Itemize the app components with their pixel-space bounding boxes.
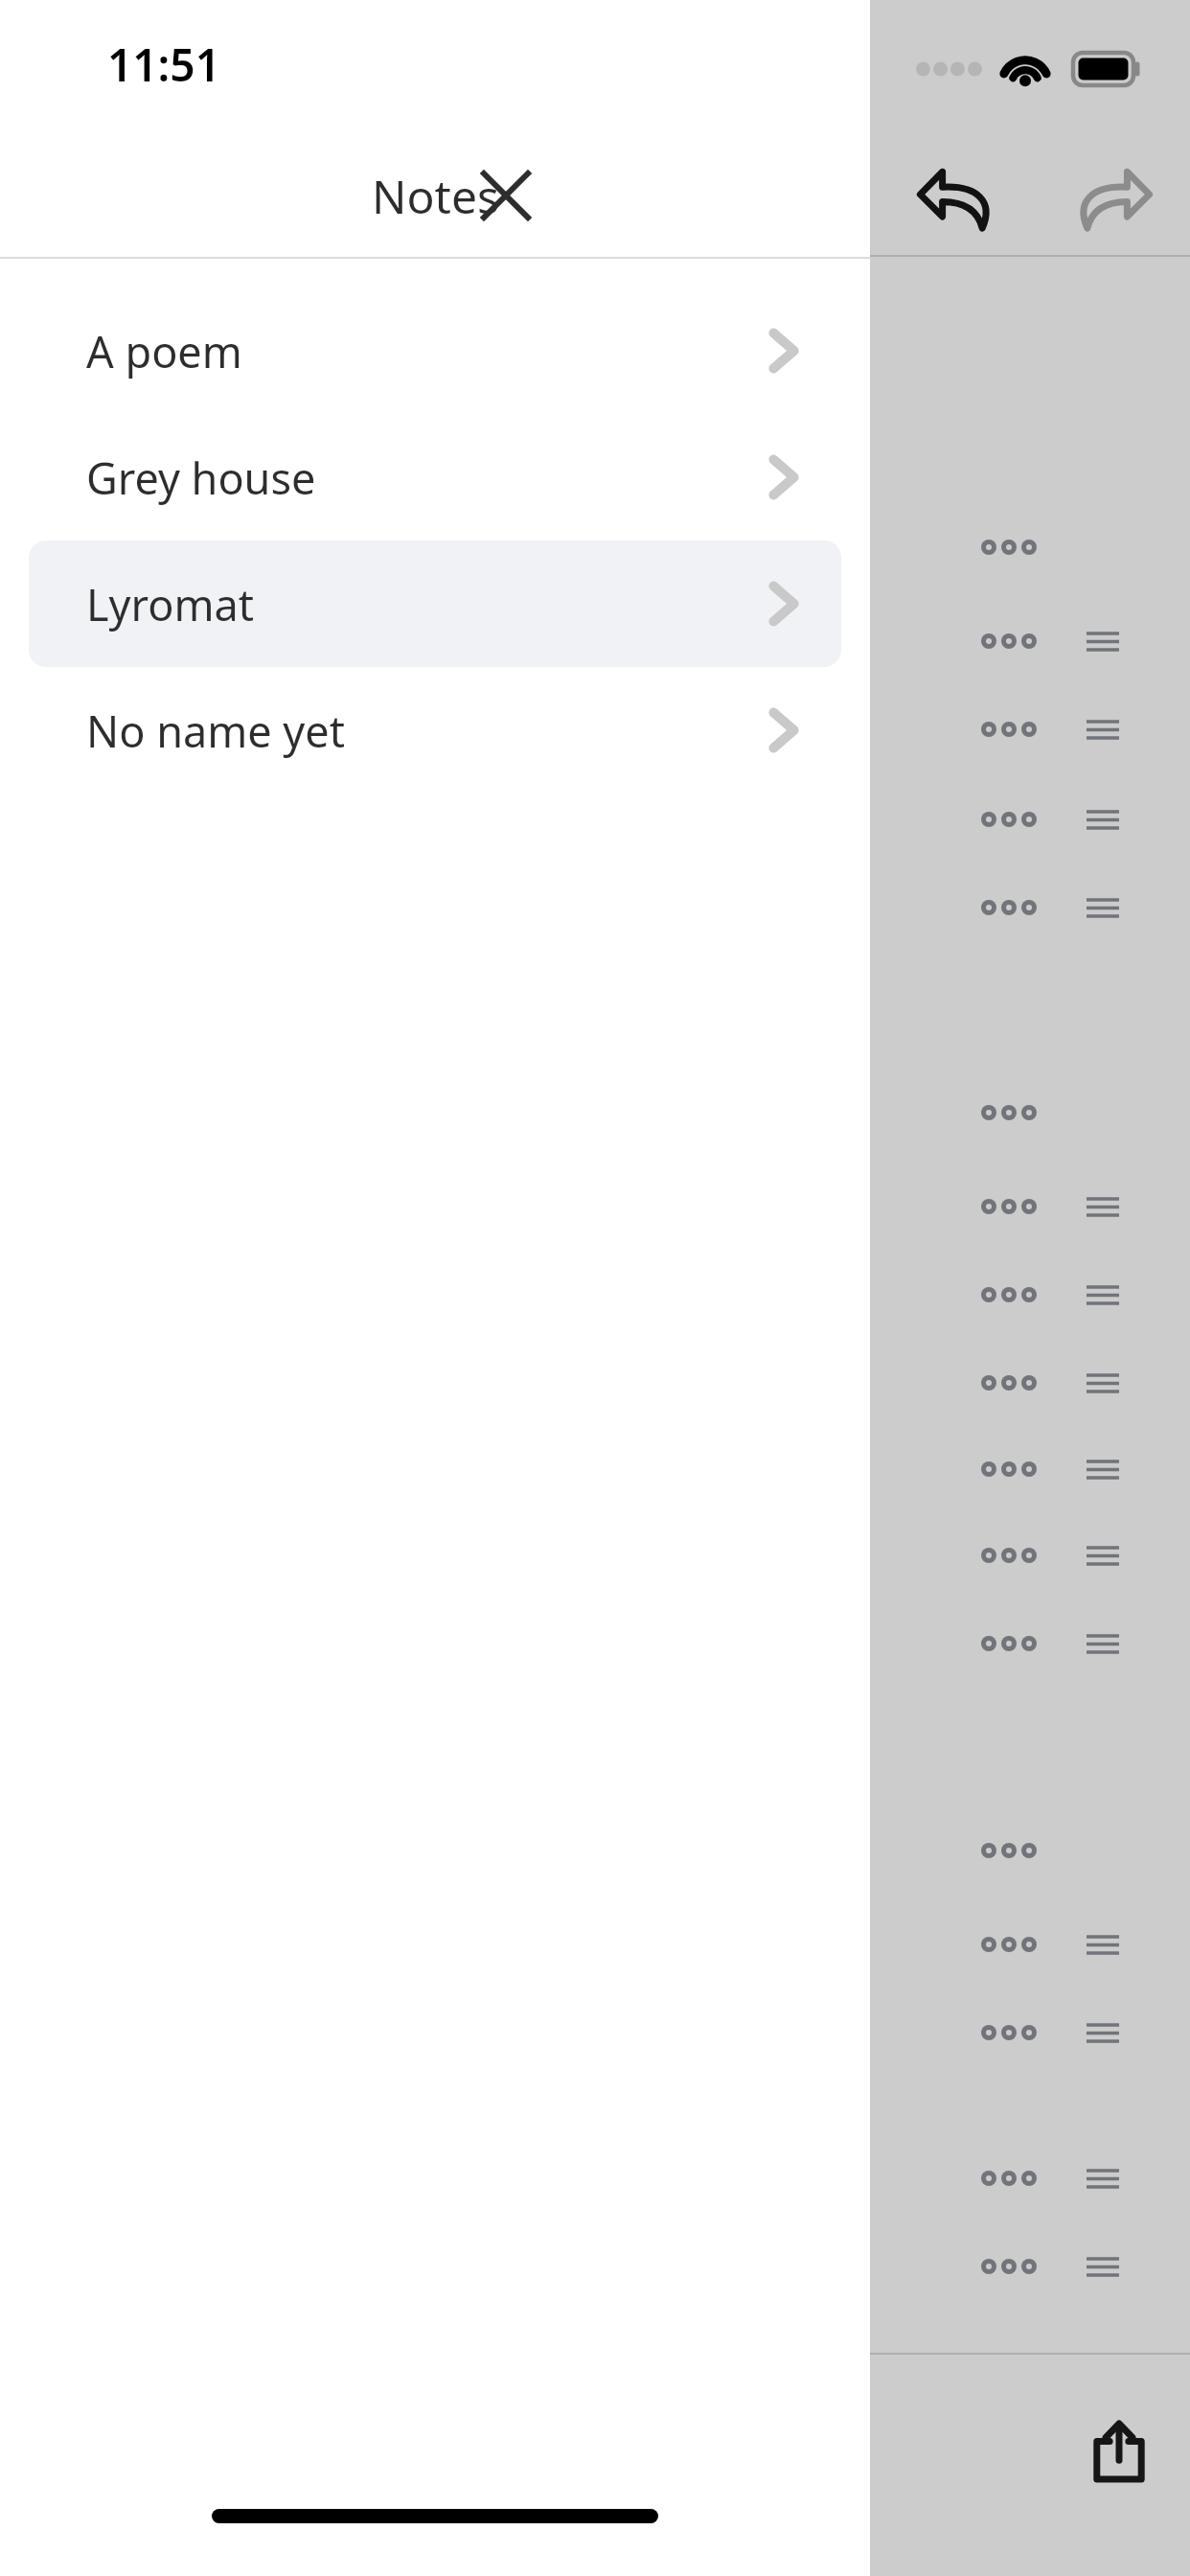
staticText: Lyromat [86, 575, 255, 633]
button[interactable]: No name yet [29, 667, 841, 793]
button[interactable]: Close [458, 148, 554, 243]
staticText: No name yet [86, 701, 345, 760]
button[interactable]: Redo [1056, 142, 1171, 257]
button[interactable]: Lyromat [29, 540, 841, 667]
button[interactable]: Grey house [29, 414, 841, 540]
button[interactable]: A poem [29, 287, 841, 414]
button[interactable]: Share [1062, 2394, 1177, 2509]
staticText: Grey house [86, 448, 316, 507]
button[interactable]: Undo [899, 142, 1014, 257]
staticText: A poem [86, 322, 242, 380]
staticText: Notes [372, 165, 499, 227]
staticText: 11:51 [107, 34, 220, 95]
